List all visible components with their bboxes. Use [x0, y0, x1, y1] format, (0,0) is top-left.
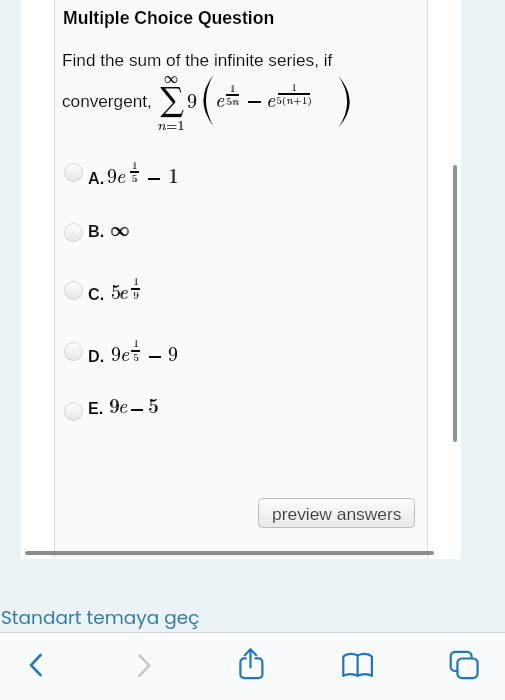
staticText: 5 [148, 391, 158, 419]
button[interactable]: Bookmarks [338, 646, 378, 684]
staticText: 1 [96, 274, 176, 288]
staticText: 1 [96, 274, 176, 288]
staticText: 5n [192, 94, 272, 108]
staticText: 1 [254, 80, 334, 94]
staticText: e [118, 277, 128, 305]
staticText: 5 [149, 391, 159, 419]
staticText: e [266, 84, 276, 112]
staticText: 9 [187, 85, 197, 113]
staticText: 1 [94, 158, 174, 172]
staticText: B. [88, 222, 105, 240]
button[interactable] [60, 217, 400, 249]
staticText: A. [88, 169, 105, 187]
staticText: E. [88, 399, 104, 417]
staticText: 9 [96, 288, 176, 302]
staticText: 5 [111, 277, 121, 305]
staticText: 9 [107, 161, 117, 189]
staticText: C. [88, 285, 105, 303]
staticText: Standart temaya geç [1, 605, 200, 631]
staticText: 9 [109, 391, 119, 419]
staticText: 5 [96, 350, 176, 364]
staticText: D. [88, 347, 105, 365]
staticText: n=1 [131, 115, 211, 133]
staticText: n=1 [131, 115, 211, 133]
staticText: ∞ [164, 67, 178, 87]
staticText: e [116, 161, 126, 189]
staticText: ∞ [111, 215, 130, 242]
staticText: e [120, 339, 130, 367]
staticText: e [116, 161, 126, 189]
staticText: e [215, 84, 225, 112]
staticText: e [215, 84, 225, 112]
staticText: 1 [254, 80, 334, 94]
staticText: e [120, 339, 130, 367]
staticText: 1 [192, 81, 272, 95]
button[interactable]: preview answers [258, 498, 415, 528]
staticText: ∞ [164, 67, 178, 87]
button[interactable] [60, 274, 400, 306]
staticText: 1 [95, 158, 175, 172]
staticText: 5(n+1) [254, 93, 334, 107]
staticText: 9 [187, 85, 197, 113]
button[interactable] [60, 335, 400, 367]
staticText: e [266, 84, 276, 112]
staticText: ∑ [158, 87, 187, 116]
staticText: 1 [96, 336, 176, 350]
staticText: 5n [193, 94, 273, 108]
staticText: 9 [168, 339, 178, 367]
staticText: 9 [111, 339, 121, 367]
button[interactable]: Back [14, 646, 58, 684]
staticText: 1 [193, 81, 273, 95]
button[interactable]: Standart temaya geç [0, 606, 215, 632]
staticText: convergent, [62, 91, 152, 110]
button[interactable]: Forward [122, 646, 166, 684]
staticText: 5 [96, 350, 176, 364]
staticText: 5 [94, 171, 174, 185]
staticText: 5(n+1) [254, 93, 334, 107]
staticText: 9 [110, 391, 120, 419]
staticText: e [118, 391, 128, 419]
staticText: 9 [107, 161, 117, 189]
staticText: 5 [95, 171, 175, 185]
staticText: 5 [111, 277, 121, 305]
staticText: ∞ [110, 215, 129, 242]
button[interactable]: Share [234, 644, 270, 684]
staticText: 9 [168, 339, 178, 367]
staticText: e [118, 391, 128, 419]
button[interactable]: Tabs [446, 646, 486, 684]
staticText: Multiple Choice Question [63, 8, 275, 28]
staticText: 1 [169, 161, 179, 189]
staticText: preview answers [272, 504, 402, 523]
staticText: Find the sum of the infinite series, if [62, 50, 333, 69]
staticText: e [119, 277, 129, 305]
button[interactable] [60, 156, 400, 188]
staticText: 1 [168, 161, 178, 189]
button[interactable] [60, 395, 400, 427]
staticText: 9 [96, 288, 176, 302]
staticText: 1 [96, 336, 176, 350]
staticText: 9 [111, 339, 121, 367]
